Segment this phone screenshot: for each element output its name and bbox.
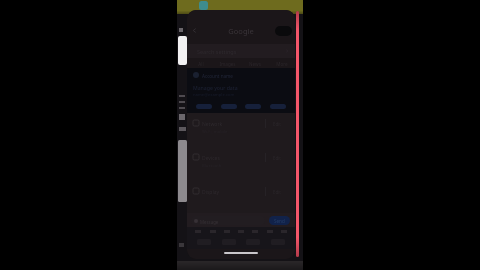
staticText: Devices	[202, 155, 220, 162]
staticText: More	[276, 61, 288, 67]
button[interactable]	[178, 140, 187, 202]
button[interactable]: Message	[191, 216, 265, 225]
button[interactable]	[270, 104, 286, 109]
button[interactable]	[178, 36, 187, 65]
staticText: Account name	[202, 73, 233, 79]
button[interactable]: Account	[275, 26, 292, 36]
staticText: name@example.com	[193, 92, 235, 98]
staticText: Message	[200, 219, 219, 225]
staticText: Network	[202, 121, 223, 128]
button[interactable]	[196, 104, 212, 109]
button[interactable]	[221, 104, 237, 109]
staticText: Google	[228, 26, 254, 36]
staticText: News	[249, 61, 261, 67]
other: App icon	[199, 1, 208, 10]
staticText: Send	[274, 218, 285, 224]
button[interactable]: Send	[269, 216, 290, 225]
staticText: Images	[219, 61, 236, 67]
button[interactable]	[245, 104, 261, 109]
button[interactable]: Back	[191, 27, 198, 34]
staticText: All	[198, 61, 204, 67]
staticText: Manage your data	[193, 84, 238, 91]
